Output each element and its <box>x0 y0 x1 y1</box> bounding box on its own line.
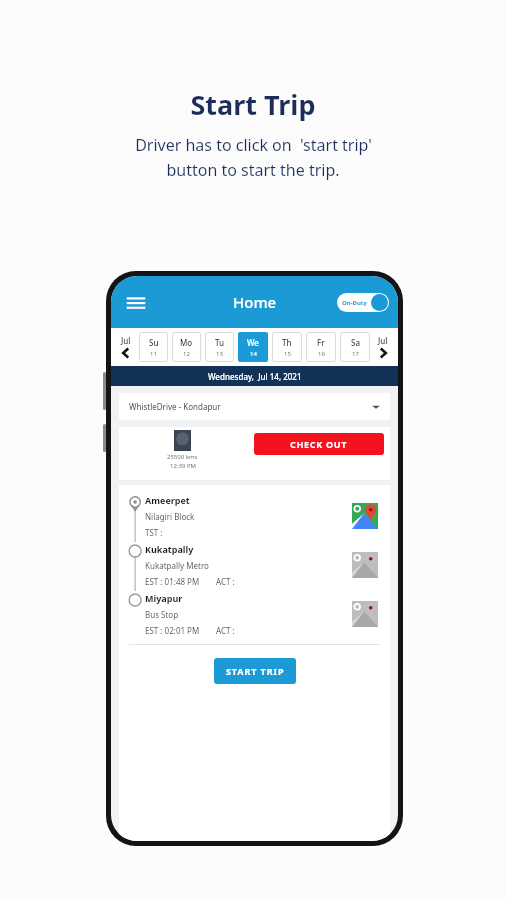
button[interactable]: Sa <box>340 332 370 362</box>
staticText: ACT : <box>216 625 235 636</box>
staticText: EST : 01:48 PM <box>145 576 200 587</box>
staticText: button to start the trip. <box>166 159 340 181</box>
staticText: We <box>247 337 259 348</box>
staticText: 14 <box>250 350 257 358</box>
button[interactable]: START TRIP <box>214 658 296 684</box>
staticText: Home <box>233 292 277 312</box>
staticText: 25500 kms <box>167 453 198 461</box>
button[interactable]: Mo <box>172 332 201 362</box>
staticText: 17 <box>352 350 359 358</box>
staticText: Driver has to click on 'start trip' <box>135 134 372 156</box>
button[interactable]: WhistleDrive - Kondapur <box>119 393 390 420</box>
button[interactable]: Su <box>139 332 168 362</box>
staticText: 15 <box>284 350 291 358</box>
staticText: 16 <box>318 350 325 358</box>
button[interactable]: We <box>238 332 268 362</box>
button[interactable]: On-Duty <box>337 293 389 312</box>
staticText: Mo <box>180 337 193 348</box>
staticText: ACT : <box>216 576 235 587</box>
button[interactable]: Th <box>272 332 302 362</box>
staticText: TST : <box>145 527 163 538</box>
staticText: Nilagiri Block <box>145 511 195 522</box>
button[interactable]: Open in Maps <box>352 503 378 529</box>
staticText: Wednesday, Jul 14, 2021 <box>208 371 302 382</box>
staticText: Th <box>282 337 292 348</box>
button[interactable]: Tu <box>205 332 234 362</box>
staticText: Kukatpally Metro <box>145 560 209 571</box>
staticText: EST : 02:01 PM <box>145 625 200 636</box>
staticText: Su <box>149 337 159 348</box>
button[interactable]: Menu <box>123 289 149 315</box>
staticText: Jul <box>378 335 388 346</box>
staticText: Fr <box>317 337 325 348</box>
staticText: Tu <box>215 337 225 348</box>
staticText: Ameerpet <box>145 494 190 506</box>
button[interactable]: CHECK OUT <box>254 433 384 455</box>
staticText: Start Trip <box>190 86 316 123</box>
button[interactable]: Open in Maps <box>352 552 378 578</box>
staticText: 12:39 PM <box>170 462 196 470</box>
staticText: 12 <box>183 350 190 358</box>
staticText: WhistleDrive - Kondapur <box>129 401 221 412</box>
staticText: Kukatpally <box>145 543 194 555</box>
button[interactable]: Next week <box>372 335 394 360</box>
staticText: CHECK OUT <box>290 438 348 450</box>
staticText: 11 <box>150 350 157 358</box>
button[interactable]: Fr <box>306 332 336 362</box>
button[interactable]: Previous week <box>115 335 137 360</box>
staticText: Miyapur <box>145 592 183 604</box>
button[interactable]: Open in Maps <box>352 601 378 627</box>
staticText: Sa <box>351 337 360 348</box>
staticText: Bus Stop <box>145 609 179 620</box>
staticText: 13 <box>216 350 223 358</box>
staticText: On-Duty <box>342 299 367 307</box>
staticText: Jul <box>121 335 131 346</box>
staticText: START TRIP <box>226 665 285 677</box>
